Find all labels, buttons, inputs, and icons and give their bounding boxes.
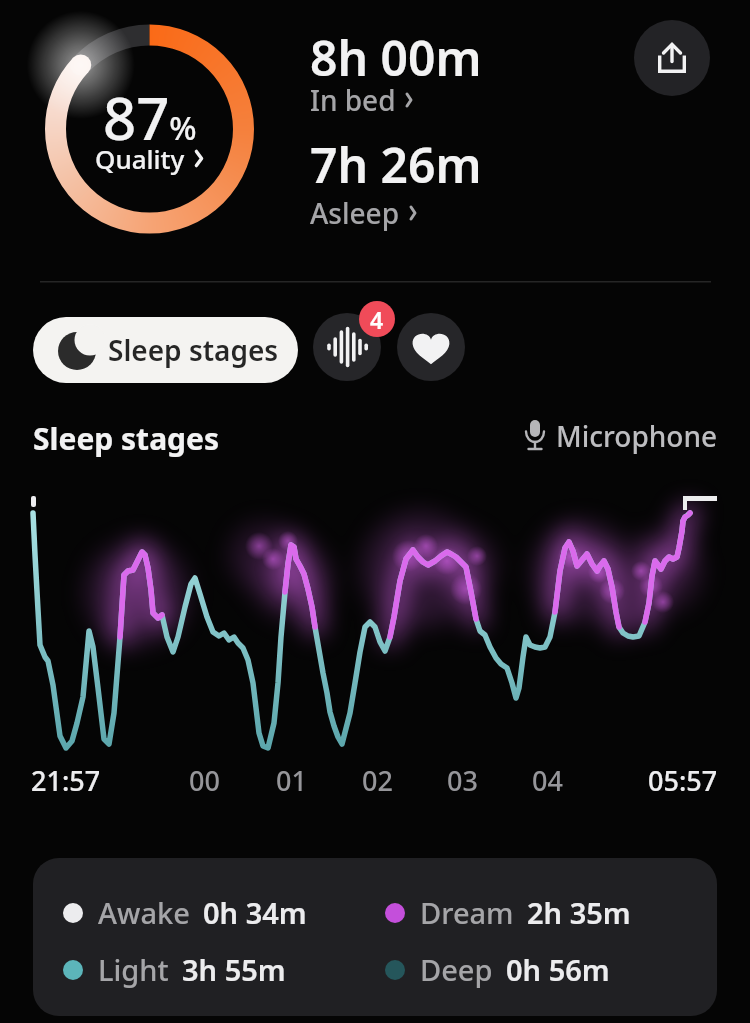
staticText: Microphone bbox=[556, 417, 718, 455]
button[interactable]: Asleep bbox=[310, 194, 418, 232]
button[interactable]: In bed bbox=[310, 81, 414, 119]
staticText: Sleep stages bbox=[33, 418, 220, 459]
staticText: 00 bbox=[189, 762, 220, 799]
button[interactable]: Microphone bbox=[524, 417, 718, 455]
staticText: Deep bbox=[420, 950, 493, 989]
button[interactable]: Awake bbox=[33, 858, 717, 1016]
staticText: Awake bbox=[98, 893, 190, 932]
button[interactable] bbox=[313, 313, 381, 381]
staticText: 2h 35m bbox=[527, 893, 631, 932]
staticText: Asleep bbox=[310, 194, 400, 232]
staticText: 4 bbox=[370, 304, 384, 335]
button[interactable]: Quality bbox=[95, 141, 205, 176]
staticText: Dream bbox=[420, 893, 514, 932]
staticText: 87% bbox=[103, 78, 197, 150]
staticText: 05:57 bbox=[648, 762, 718, 799]
staticText: 0h 34m bbox=[203, 893, 307, 932]
staticText: Sleep stages bbox=[108, 331, 279, 369]
staticText: 04 bbox=[532, 762, 563, 799]
staticText: 21:57 bbox=[31, 762, 101, 799]
staticText: Light bbox=[98, 950, 169, 989]
button[interactable] bbox=[634, 20, 710, 96]
staticText: 0h 56m bbox=[506, 950, 610, 989]
staticText: 7h 26m bbox=[310, 132, 482, 197]
staticText: 3h 55m bbox=[182, 950, 286, 989]
staticText: 01 bbox=[276, 762, 307, 799]
staticText: Quality bbox=[95, 141, 185, 176]
staticText: In bed bbox=[310, 81, 396, 119]
staticText: 8h 00m bbox=[310, 25, 482, 90]
staticText: 02 bbox=[362, 762, 393, 799]
staticText: 03 bbox=[447, 762, 478, 799]
button[interactable] bbox=[397, 313, 465, 381]
button[interactable]: Sleep stages bbox=[33, 317, 298, 383]
